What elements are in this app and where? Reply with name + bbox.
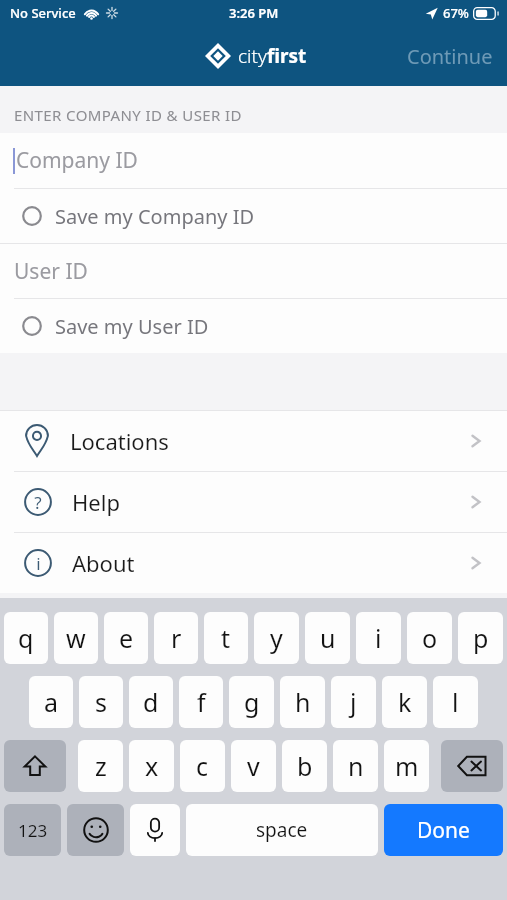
staticText: 3:26 PM: [229, 4, 279, 22]
staticText: Help: [72, 487, 120, 517]
staticText: s: [95, 685, 107, 719]
button[interactable]: y: [254, 612, 299, 664]
button[interactable]: Company ID: [0, 133, 507, 188]
button[interactable]: q: [4, 612, 48, 664]
other: Open: [465, 491, 487, 513]
staticText: ENTER COMPANY ID & USER ID: [14, 105, 242, 125]
button[interactable]: u: [305, 612, 350, 664]
staticText: k: [398, 685, 412, 719]
button[interactable]: i: [356, 612, 401, 664]
staticText: n: [348, 749, 364, 783]
button[interactable]: Backspace: [441, 740, 503, 792]
staticText: Save my Company ID: [55, 203, 255, 230]
button[interactable]: w: [54, 612, 98, 664]
staticText: i: [375, 621, 382, 655]
staticText: User ID: [14, 257, 88, 286]
staticText: space: [256, 817, 308, 843]
staticText: u: [320, 621, 336, 655]
button[interactable]: s: [79, 676, 123, 728]
staticText: Company ID: [16, 146, 138, 175]
staticText: t: [221, 621, 231, 655]
button[interactable]: h: [280, 676, 325, 728]
staticText: d: [143, 685, 159, 719]
button[interactable]: j: [331, 676, 376, 728]
staticText: y: [270, 621, 283, 655]
staticText: e: [119, 621, 134, 655]
button[interactable]: p: [458, 612, 503, 664]
staticText: ?: [34, 491, 42, 514]
button[interactable]: m: [384, 740, 429, 792]
staticText: About: [72, 548, 135, 578]
button[interactable]: Dictate: [130, 804, 180, 856]
staticText: m: [395, 749, 419, 783]
staticText: city: [238, 43, 267, 69]
staticText: 123: [18, 819, 48, 842]
staticText: h: [295, 685, 311, 719]
button[interactable]: o: [407, 612, 452, 664]
staticText: j: [350, 685, 357, 719]
staticText: Done: [417, 816, 470, 845]
staticText: f: [197, 685, 206, 719]
staticText: w: [66, 621, 86, 655]
button[interactable]: Done: [384, 804, 503, 856]
button[interactable]: Emoji: [67, 804, 124, 856]
button[interactable]: 123: [4, 804, 61, 856]
button[interactable]: t: [204, 612, 248, 664]
staticText: q: [18, 621, 34, 655]
button[interactable]: i: [0, 533, 507, 593]
button[interactable]: a: [29, 676, 73, 728]
staticText: p: [473, 621, 489, 655]
button[interactable]: Shift: [4, 740, 66, 792]
button[interactable]: User ID: [0, 244, 507, 298]
button[interactable]: e: [104, 612, 148, 664]
button[interactable]: f: [179, 676, 223, 728]
button[interactable]: c: [180, 740, 225, 792]
button[interactable]: z: [78, 740, 123, 792]
staticText: l: [452, 685, 459, 719]
other: Open: [465, 430, 487, 452]
staticText: Save my User ID: [55, 313, 209, 340]
button[interactable]: x: [129, 740, 174, 792]
other: Open: [465, 552, 487, 574]
staticText: z: [95, 749, 107, 783]
staticText: No Service: [10, 4, 76, 22]
staticText: i: [36, 552, 41, 575]
staticText: b: [297, 749, 313, 783]
button[interactable]: n: [333, 740, 378, 792]
button[interactable]: l: [433, 676, 478, 728]
button[interactable]: space: [186, 804, 378, 856]
button[interactable]: g: [229, 676, 274, 728]
button[interactable]: Continue: [393, 35, 507, 78]
staticText: Locations: [70, 426, 169, 456]
staticText: a: [44, 685, 59, 719]
staticText: x: [145, 749, 159, 783]
button[interactable]: Locations: [0, 411, 507, 471]
staticText: r: [171, 621, 182, 655]
button[interactable]: ?: [0, 472, 507, 532]
staticText: 67%: [443, 4, 469, 22]
staticText: g: [244, 685, 260, 719]
button[interactable]: r: [154, 612, 198, 664]
button[interactable]: b: [282, 740, 327, 792]
button[interactable]: d: [129, 676, 173, 728]
staticText: first: [267, 43, 307, 69]
button[interactable]: Save my Company ID: [0, 189, 507, 243]
staticText: Continue: [407, 43, 493, 70]
button[interactable]: Save my User ID: [0, 299, 507, 353]
button[interactable]: k: [382, 676, 427, 728]
button[interactable]: v: [231, 740, 276, 792]
staticText: o: [422, 621, 438, 655]
staticText: v: [247, 749, 260, 783]
staticText: c: [196, 749, 209, 783]
